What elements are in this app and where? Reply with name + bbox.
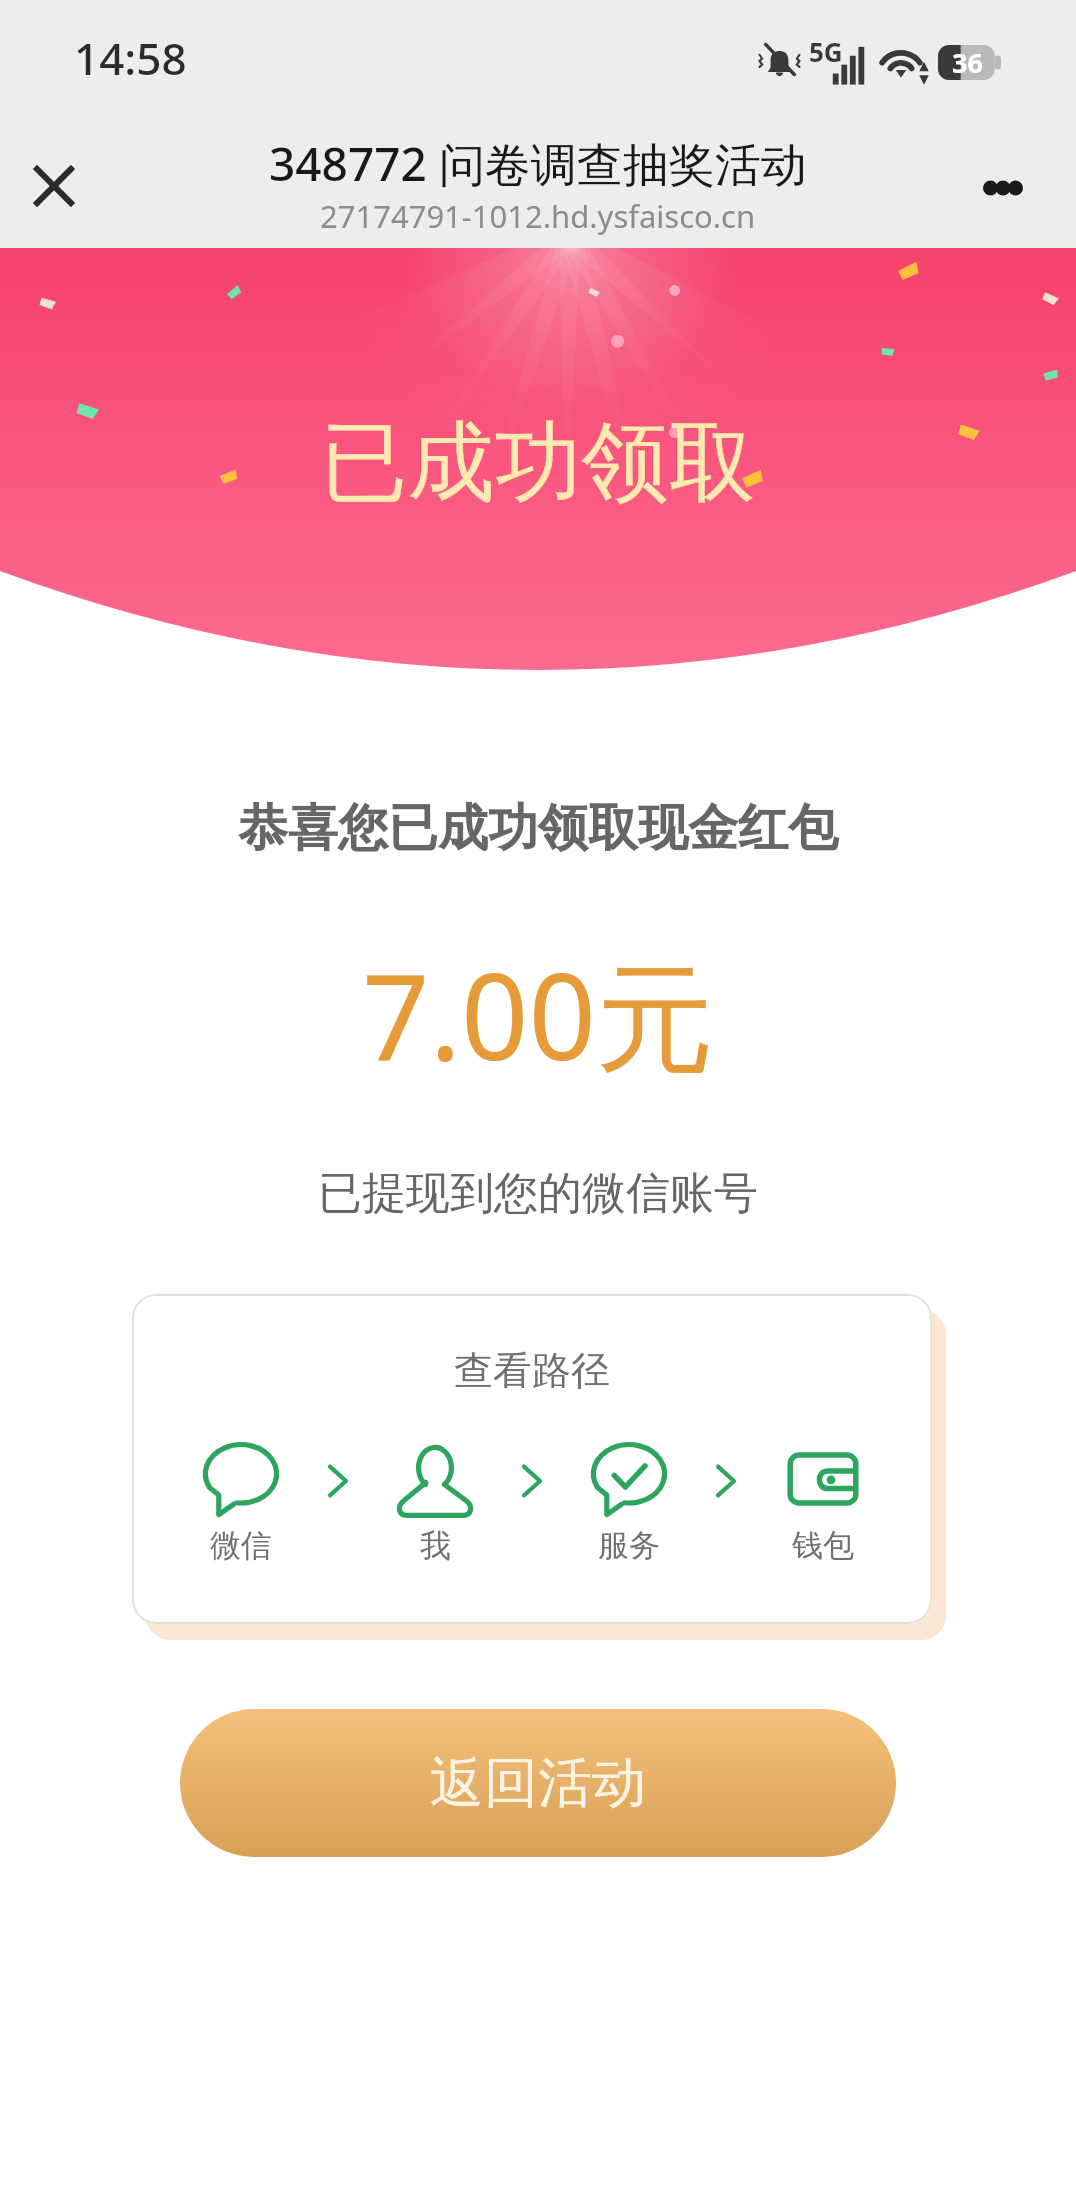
staticText: 348772 问卷调查抽奖活动: [269, 132, 807, 195]
staticText: 微信: [210, 1526, 272, 1565]
staticText: 14:58: [74, 28, 187, 88]
button[interactable]: 查看路径: [132, 1294, 932, 1624]
button[interactable]: Close: [18, 148, 90, 220]
staticText: 7.00元: [0, 934, 1076, 1095]
staticText: 返回活动: [430, 1749, 646, 1817]
staticText: 已成功领取: [0, 408, 1076, 518]
staticText: 36: [952, 44, 983, 79]
button[interactable]: More options: [975, 158, 1031, 218]
staticText: 钱包: [792, 1526, 854, 1565]
staticText: 查看路径: [132, 1346, 932, 1395]
staticText: 已提现到您的微信账号: [0, 1166, 1076, 1221]
staticText: 5G: [809, 34, 843, 69]
staticText: 27174791-1012.hd.ysfaisco.cn: [320, 195, 756, 237]
staticText: 我: [420, 1526, 451, 1565]
staticText: 服务: [598, 1526, 660, 1565]
staticText: 恭喜您已成功领取现金红包: [0, 797, 1076, 860]
button[interactable]: 返回活动: [180, 1709, 896, 1857]
